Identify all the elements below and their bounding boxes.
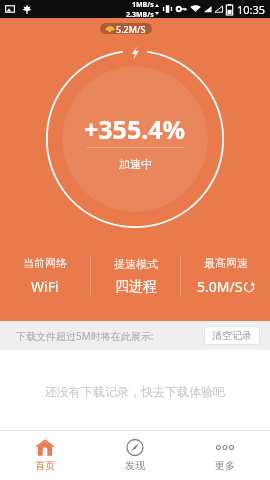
- button[interactable]: 首页: [0, 431, 90, 480]
- staticText: 当前网络: [23, 256, 67, 270]
- staticText: 更多: [215, 459, 235, 472]
- staticText: 最高网速: [204, 256, 248, 270]
- staticText: WiFi: [31, 277, 59, 296]
- staticText: +355.4%: [84, 112, 186, 146]
- staticText: 加速中: [119, 157, 152, 171]
- staticText: 清空记录: [212, 329, 252, 342]
- staticText: 还没有下载记录，快去下载体验吧: [45, 384, 225, 399]
- button[interactable]: 提速模式: [91, 253, 180, 299]
- staticText: 发现: [125, 459, 145, 472]
- other: Refresh: [243, 281, 255, 293]
- button[interactable]: 当前网络: [0, 253, 90, 299]
- button[interactable]: 最高网速: [181, 253, 270, 299]
- button[interactable]: 5.2M/S: [100, 23, 152, 34]
- staticText: 四进程: [115, 278, 157, 296]
- staticText: 5.2M/S: [116, 23, 146, 34]
- staticText: 10:35: [237, 2, 266, 17]
- staticText: 5.0M/S: [197, 277, 243, 296]
- button[interactable]: 清空记录: [204, 326, 260, 345]
- staticText: 1MB/s: [132, 0, 154, 10]
- button[interactable]: 发现: [90, 431, 180, 480]
- staticText: 2.3MB/s: [126, 10, 154, 18]
- staticText: 下载文件超过5M时将在此展示:: [16, 329, 154, 343]
- staticText: 提速模式: [114, 257, 158, 271]
- button[interactable]: 更多: [180, 431, 270, 480]
- staticText: 首页: [35, 459, 55, 472]
